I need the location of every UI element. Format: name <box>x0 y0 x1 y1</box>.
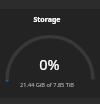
staticText: 0% <box>39 54 60 74</box>
staticText: 21.44 GiB of 7.85 TiB <box>20 81 74 89</box>
staticText: Storage <box>33 15 61 25</box>
